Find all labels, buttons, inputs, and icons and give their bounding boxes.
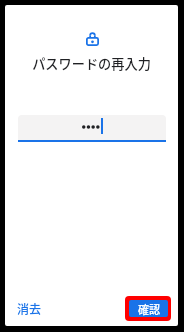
button[interactable]: 確認	[129, 300, 168, 317]
staticText: 確認	[138, 301, 160, 317]
button[interactable]	[18, 115, 166, 142]
staticText: パスワードの再入力	[5, 54, 178, 73]
button[interactable]: 消去	[11, 294, 48, 323]
staticText: 消去	[17, 300, 42, 317]
other: Lock	[86, 32, 99, 46]
